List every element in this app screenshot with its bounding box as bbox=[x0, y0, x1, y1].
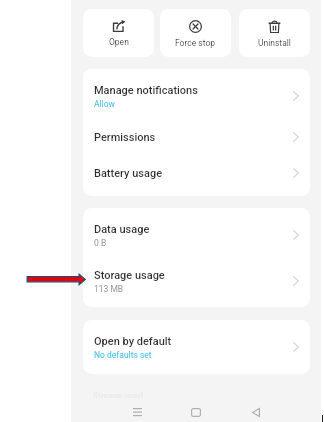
button[interactable]: Permissions bbox=[83, 119, 310, 155]
button[interactable]: Data usage bbox=[83, 212, 310, 258]
button[interactable]: Open bbox=[83, 9, 154, 57]
button[interactable]: Back bbox=[242, 400, 270, 422]
staticText: Battery usage bbox=[94, 167, 163, 180]
button[interactable]: Storage usage bbox=[83, 258, 310, 304]
button[interactable]: Battery usage bbox=[83, 155, 310, 191]
button[interactable]: Recent apps bbox=[123, 400, 151, 422]
staticText: Manage notifications bbox=[94, 84, 198, 97]
staticText: Storage used bbox=[93, 391, 144, 398]
button[interactable]: Manage notifications bbox=[83, 73, 310, 119]
button[interactable]: Force stop bbox=[160, 9, 231, 57]
staticText: Open by default bbox=[94, 335, 172, 348]
staticText: Storage usage bbox=[94, 269, 165, 282]
button[interactable]: Home bbox=[182, 400, 210, 422]
staticText: Permissions bbox=[94, 131, 156, 144]
staticText: 0 B bbox=[94, 238, 107, 248]
button[interactable]: Open by default bbox=[83, 324, 310, 370]
staticText: Open bbox=[109, 37, 129, 47]
button[interactable]: Uninstall bbox=[239, 9, 310, 57]
staticText: No defaults set bbox=[94, 350, 152, 360]
staticText: Allow bbox=[94, 99, 115, 109]
staticText: Uninstall bbox=[258, 38, 291, 48]
staticText: 113 MB bbox=[94, 284, 124, 294]
staticText: Data usage bbox=[94, 223, 150, 236]
staticText: Force stop bbox=[175, 38, 216, 48]
